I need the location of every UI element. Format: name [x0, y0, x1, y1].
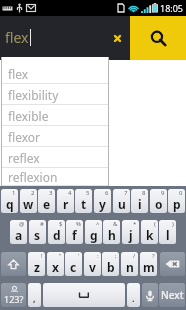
staticText: )	[172, 220, 174, 228]
staticText: 8	[142, 189, 146, 197]
staticText: flexibility	[8, 87, 59, 103]
button[interactable]: 5	[75, 189, 92, 213]
button[interactable]: &	[103, 220, 120, 244]
button[interactable]: ?	[140, 252, 157, 276]
staticText: f	[72, 227, 77, 243]
staticText: r	[63, 196, 69, 212]
button[interactable]: )	[159, 220, 176, 244]
button[interactable]: 4	[57, 189, 74, 213]
button[interactable]: .	[127, 283, 140, 307]
staticText: e	[43, 196, 51, 212]
button[interactable]: ;	[102, 252, 119, 276]
button[interactable]: Space	[43, 283, 125, 307]
staticText: :	[97, 252, 99, 260]
staticText: ,	[33, 292, 36, 304]
staticText: 0	[179, 189, 183, 197]
button[interactable]: /	[121, 252, 138, 276]
staticText: o	[155, 196, 163, 212]
staticText: x	[52, 259, 59, 275]
button[interactable]: Symbols	[1, 283, 26, 307]
button[interactable]: 8	[131, 189, 148, 213]
staticText: b	[107, 259, 115, 275]
staticText: y	[99, 196, 106, 212]
staticText: #	[40, 220, 44, 228]
staticText: $	[59, 220, 63, 228]
staticText: s	[34, 227, 41, 243]
button[interactable]: "	[47, 252, 64, 276]
staticText: reflexion	[8, 169, 58, 185]
button[interactable]: flexible	[1, 105, 109, 126]
staticText: flexible	[8, 108, 49, 124]
staticText: 9	[161, 189, 165, 197]
staticText: c	[70, 259, 77, 275]
staticText: v	[89, 259, 96, 275]
staticText: flex	[5, 28, 29, 47]
staticText: flex	[8, 66, 29, 82]
staticText: ;	[115, 252, 117, 260]
button[interactable]: Voice input	[142, 283, 158, 307]
staticText: @	[19, 220, 25, 228]
staticText: h	[108, 227, 116, 243]
staticText: .	[132, 292, 135, 304]
staticText: *	[133, 220, 137, 228]
button[interactable]: %	[66, 220, 83, 244]
button[interactable]: flexibility	[1, 84, 109, 105]
button[interactable]: 9	[150, 189, 167, 213]
button[interactable]: 1	[1, 189, 18, 213]
button[interactable]: flex	[1, 63, 109, 84]
button[interactable]: reflex	[1, 147, 109, 168]
staticText: Next	[161, 288, 184, 302]
staticText: 4	[68, 189, 72, 197]
button[interactable]: (	[141, 220, 158, 244]
staticText: (	[154, 220, 156, 228]
button[interactable]: @	[10, 220, 27, 244]
staticText: /	[133, 252, 136, 260]
staticText: 123?	[4, 293, 24, 305]
button[interactable]: $	[48, 220, 65, 244]
staticText: !	[41, 252, 43, 260]
staticText: 7	[124, 189, 128, 197]
button[interactable]: 0	[168, 189, 185, 213]
button[interactable]: 7	[113, 189, 130, 213]
staticText: 3	[49, 189, 53, 197]
staticText: n	[126, 259, 134, 275]
staticText: 6	[105, 189, 109, 197]
button[interactable]: !	[28, 252, 45, 276]
staticText: 1	[12, 189, 16, 197]
button[interactable]: 6	[94, 189, 111, 213]
button[interactable]: ,	[28, 283, 41, 307]
staticText: j	[129, 227, 133, 243]
staticText: flexor	[8, 129, 41, 145]
staticText: %	[76, 220, 81, 228]
button[interactable]: 2	[20, 189, 37, 213]
staticText: d	[53, 227, 61, 243]
button[interactable]: '	[65, 252, 82, 276]
button[interactable]: Search	[130, 16, 186, 60]
staticText: m	[143, 259, 155, 275]
staticText: 5	[86, 189, 90, 197]
button[interactable]: reflexion	[1, 168, 109, 186]
staticText: reflex	[8, 150, 40, 166]
button[interactable]: Next	[159, 283, 185, 307]
staticText: z	[34, 259, 40, 275]
staticText: k	[146, 227, 154, 243]
staticText: i	[138, 196, 142, 212]
staticText: '	[78, 252, 80, 260]
staticText: 18:05	[160, 2, 184, 14]
staticText: g	[90, 227, 98, 243]
button[interactable]: ^	[85, 220, 102, 244]
button[interactable]: 3	[38, 189, 55, 213]
button[interactable]: flexor	[1, 126, 109, 147]
button[interactable]: *	[122, 220, 139, 244]
button[interactable]: :	[84, 252, 101, 276]
button[interactable]: Shift	[1, 252, 26, 276]
button[interactable]: #	[29, 220, 46, 244]
staticText: "	[59, 252, 62, 260]
staticText: 2	[31, 189, 35, 197]
staticText: ^	[96, 220, 100, 228]
staticText: p	[173, 196, 181, 212]
staticText: q	[6, 196, 14, 212]
staticText: ?	[152, 252, 155, 260]
button[interactable]: Backspace	[160, 252, 185, 276]
button[interactable]: Clear query	[104, 16, 130, 60]
